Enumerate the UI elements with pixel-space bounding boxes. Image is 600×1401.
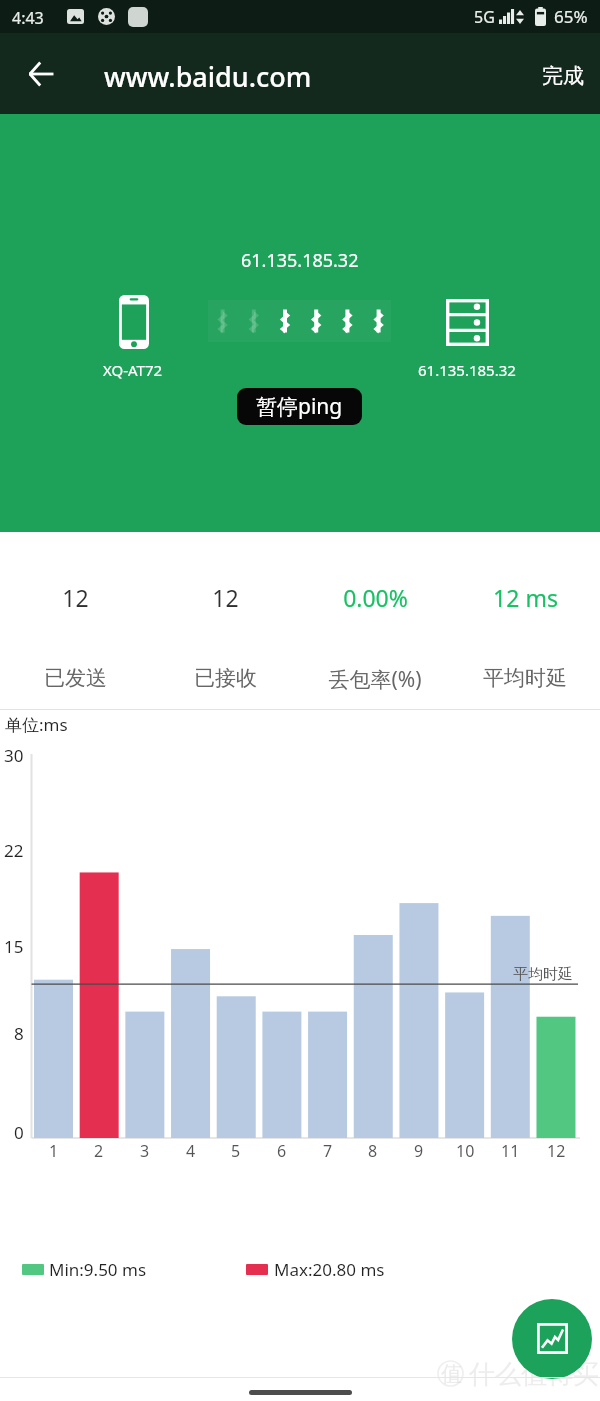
button[interactable]: Show chart — [512, 1299, 592, 1379]
staticText: 暂停ping — [256, 392, 343, 421]
staticText: 15 — [4, 935, 24, 958]
staticText: 61.135.185.32 — [241, 248, 359, 273]
staticText: 9 — [414, 1140, 424, 1162]
staticText: 12 ms — [493, 582, 558, 613]
staticText: 2 — [94, 1140, 104, 1162]
staticText: 完成 — [542, 63, 584, 89]
staticText: 0 — [14, 1121, 24, 1144]
staticText: XQ-AT72 — [103, 360, 163, 380]
staticText: 已接收 — [194, 665, 257, 691]
staticText: 已发送 — [44, 665, 107, 691]
staticText: 单位:ms — [5, 713, 68, 736]
button[interactable]: Back — [16, 49, 66, 99]
staticText: 11 — [501, 1140, 520, 1162]
staticText: 4:43 — [12, 7, 44, 29]
button[interactable]: 完成 — [534, 55, 592, 97]
staticText: 12 — [212, 582, 239, 613]
staticText: 1 — [49, 1140, 59, 1162]
staticText: 3 — [140, 1140, 150, 1162]
staticText: 12 — [62, 582, 89, 613]
staticText: www.baidu.com — [104, 58, 312, 95]
staticText: 4 — [186, 1140, 196, 1162]
button[interactable]: 暂停ping — [237, 388, 362, 425]
staticText: Max:20.80 ms — [274, 1258, 385, 1281]
staticText: Min:9.50 ms — [49, 1258, 147, 1281]
staticText: 0.00% — [343, 582, 408, 613]
staticText: 什么值得买 — [469, 1358, 599, 1391]
staticText: 5 — [231, 1140, 241, 1162]
staticText: 65% — [554, 5, 588, 28]
staticText: 30 — [4, 744, 24, 767]
staticText: 22 — [4, 839, 24, 862]
staticText: 值 — [441, 1361, 462, 1387]
staticText: 平均时延 — [513, 965, 573, 984]
staticText: 8 — [368, 1140, 378, 1162]
staticText: 10 — [456, 1140, 475, 1162]
staticText: 5G — [474, 6, 495, 28]
staticText: 丢包率(%) — [328, 665, 422, 694]
staticText: 8 — [14, 1022, 24, 1045]
staticText: 6 — [277, 1140, 287, 1162]
staticText: 平均时延 — [483, 665, 567, 691]
staticText: 61.135.185.32 — [418, 360, 516, 380]
staticText: 12 — [547, 1140, 566, 1162]
staticText: 7 — [323, 1140, 333, 1162]
